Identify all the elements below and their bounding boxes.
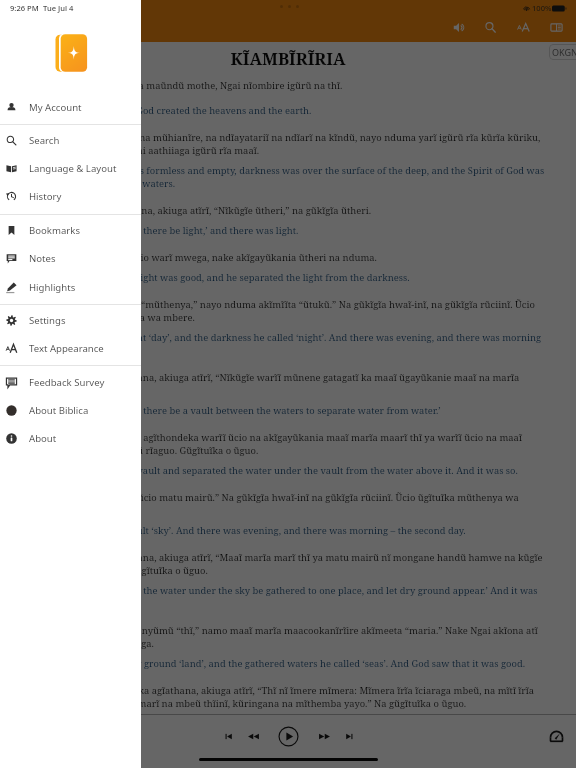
staticText: Search — [29, 134, 60, 147]
staticText: Notes — [29, 252, 56, 265]
staticText: Text Appearance — [29, 342, 104, 355]
button[interactable]: Language & Layout — [0, 154, 141, 182]
staticText: God saw that the light was good, and he … — [60, 271, 545, 284]
button[interactable]: Feedback Survey — [0, 368, 141, 396]
staticText: Ningĩ Ngai agĩathana, akiuga atĩrĩ, “Nĩk… — [60, 371, 545, 397]
staticText: Ngai akĩona atĩ ũcio warĩ mwega, nake ak… — [60, 251, 545, 264]
staticText: And God said, ‘Let there be light,’ and … — [60, 224, 545, 237]
staticText: Ngai agĩĩta ũtheri “mũthenya,” nayo ndum… — [60, 298, 545, 324]
staticText: God called the dry ground ‘land’, and th… — [60, 657, 545, 670]
staticText: So God made the vault and separated the … — [60, 464, 545, 477]
button[interactable]: Search — [0, 126, 141, 154]
staticText: Nĩ ũndũ ũcio Ngai agĩthondeka warĩĩ ũcio… — [60, 431, 545, 457]
staticText: Tue Jul 4 — [43, 3, 74, 13]
button[interactable]: Previous — [215, 723, 241, 749]
button[interactable]: About — [0, 424, 141, 452]
button[interactable]: About Biblica — [0, 396, 141, 424]
staticText: History — [29, 190, 62, 203]
button[interactable]: Audio — [448, 16, 470, 38]
staticText: Ngai agĩĩta warĩĩ ũcio matu mairũ.” Na g… — [60, 491, 545, 517]
button[interactable]: Play — [275, 723, 301, 749]
staticText: 9:26 PM — [10, 3, 39, 13]
staticText: About Biblica — [29, 404, 89, 417]
staticText: Nake Ngai agĩathana, akiuga atĩrĩ, “Nĩkũ… — [60, 204, 545, 217]
staticText: Ningĩ Ngai agĩcooka agĩathana, akiuga at… — [60, 684, 545, 710]
button[interactable]: Notes — [0, 244, 141, 272]
button[interactable]: Rewind — [240, 723, 266, 749]
staticText: Feedback Survey — [29, 376, 105, 389]
staticText: Language & Layout — [29, 162, 117, 175]
button[interactable]: Bible versions — [545, 16, 567, 38]
staticText: And God said, ‘Let there be a vault betw… — [60, 404, 545, 417]
staticText: Now the earth was formless and empty, da… — [60, 164, 545, 190]
button[interactable]: History — [0, 182, 141, 210]
button[interactable]: Text Appearance — [0, 334, 141, 362]
staticText: Settings — [29, 314, 66, 327]
button[interactable]: Playback speed — [543, 723, 569, 749]
staticText: OKGN — [552, 46, 576, 58]
button[interactable]: Text size — [512, 16, 534, 38]
staticText: Kĩambĩrĩria-inĩ kĩa maũndũ mothe, Ngai n… — [60, 79, 545, 92]
button[interactable]: OKGN — [549, 44, 576, 60]
button[interactable]: Settings — [0, 306, 141, 334]
button[interactable]: Bookmarks — [0, 216, 141, 244]
staticText: My Account — [29, 101, 82, 114]
staticText: About — [29, 432, 57, 445]
staticText: KĨAMBĨRĨRIA — [0, 47, 576, 70]
staticText: 100% — [532, 3, 552, 13]
button[interactable]: Search — [479, 16, 501, 38]
button[interactable]: Fast forward — [311, 723, 337, 749]
staticText: Na rĩrĩ, thĩ ndĩarĩ na mũhianĩre, na ndĩ… — [60, 131, 545, 157]
staticText: Ningĩ Ngai agĩathana, akiuga atĩrĩ, “Maa… — [60, 551, 545, 577]
button[interactable]: Highlights — [0, 273, 141, 301]
staticText: In the beginning God created the heavens… — [60, 104, 545, 117]
button[interactable]: My Account — [0, 93, 141, 121]
staticText: Ngai agĩĩta thĩ ĩyo nyũmũ “thĩ,” namo ma… — [60, 624, 545, 650]
staticText: Bookmarks — [29, 224, 81, 237]
staticText: Highlights — [29, 281, 76, 294]
button[interactable]: Next — [336, 723, 362, 749]
staticText: God called the vault ‘sky’. And there wa… — [60, 524, 545, 537]
staticText: And God said, ‘Let the water under the s… — [60, 584, 545, 610]
staticText: God called the light ‘day’, and the dark… — [60, 331, 545, 357]
